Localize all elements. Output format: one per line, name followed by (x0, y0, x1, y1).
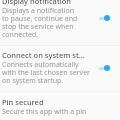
button[interactable]: Connect on system st… (0, 46, 120, 91)
staticText: Displays a notification to pause, contin… (2, 6, 78, 39)
staticText: Display notification (2, 0, 72, 6)
staticText: Pin secured (2, 97, 44, 107)
staticText: Connects automatically with the last cho… (2, 60, 90, 85)
button[interactable]: Display notification (0, 0, 120, 45)
button[interactable]: Pin secured (0, 92, 120, 120)
staticText: Secure this app with a pin (2, 107, 87, 117)
staticText: Connect on system st… (2, 50, 85, 60)
